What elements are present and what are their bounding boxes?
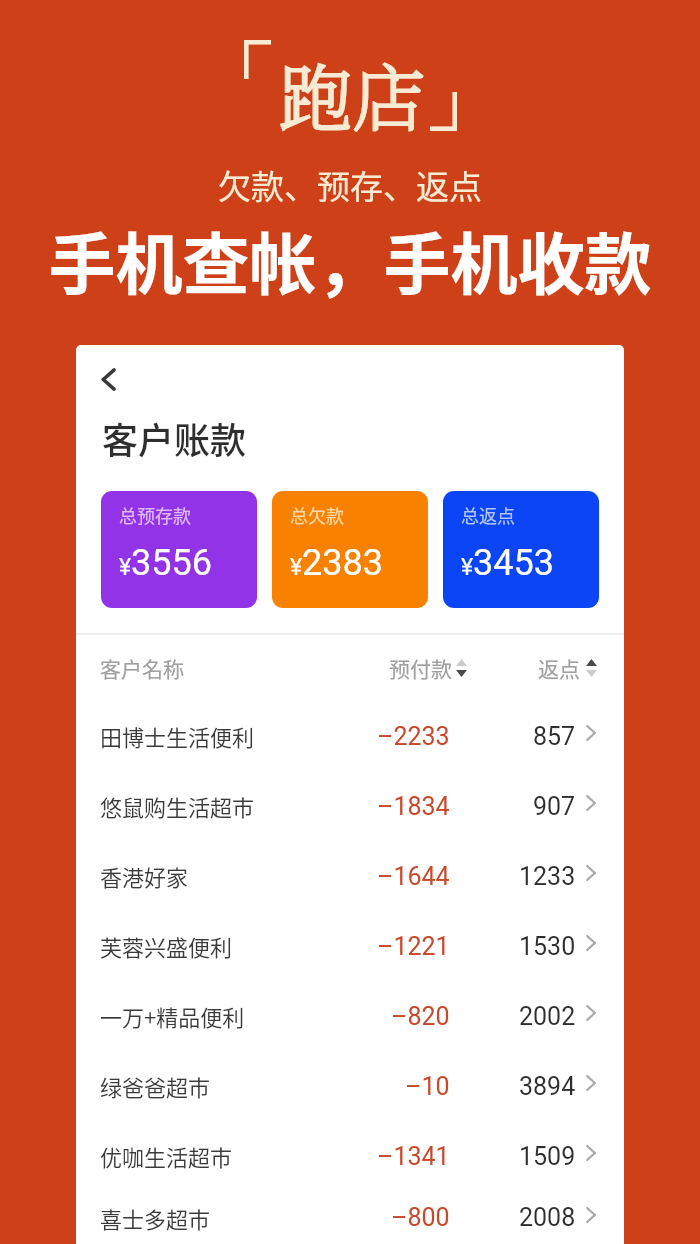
button[interactable]: Back [87,359,128,400]
button[interactable]: 一万+精品便利 [76,981,624,1051]
button[interactable]: 芙蓉兴盛便利 [76,911,624,981]
staticText: 芙蓉兴盛便利 [100,930,233,962]
staticText: 手机查帐，手机收款 [0,211,700,308]
staticText: 优咖生活超市 [100,1140,233,1172]
button[interactable]: 喜士多超市 [76,1191,624,1244]
staticText: –2233 [377,722,450,751]
button[interactable]: 返点 [467,635,597,701]
button[interactable]: 田博士生活便利 [76,701,624,771]
staticText: –1834 [377,792,450,821]
staticText: –10 [405,1072,450,1101]
staticText: 客户名称 [100,653,184,683]
staticText: 3894 [519,1072,576,1101]
staticText: 总欠款 [290,502,344,528]
button[interactable]: 悠鼠购生活超市 [76,771,624,841]
staticText: 悠鼠购生活超市 [100,790,255,822]
staticText: 1233 [519,862,576,891]
staticText: 客户账款 [102,412,247,464]
staticText: ¥3556 [119,542,213,584]
button[interactable]: 总返点 [443,491,599,608]
staticText: 1530 [519,932,576,961]
staticText: –1341 [377,1142,450,1171]
staticText: 香港好家 [100,860,189,892]
staticText: 857 [533,722,576,751]
staticText: 总返点 [461,502,515,528]
staticText: 2002 [519,1002,576,1031]
staticText: 欠款、预存、返点 [0,161,700,209]
staticText: 一万+精品便利 [100,1000,245,1032]
button[interactable]: 绿爸爸超市 [76,1051,624,1121]
staticText: 田博士生活便利 [100,720,255,752]
staticText: –820 [391,1002,450,1031]
staticText: 绿爸爸超市 [100,1070,211,1102]
button[interactable]: 总预存款 [101,491,257,608]
staticText: 返点 [538,653,580,683]
staticText: 1509 [519,1142,576,1171]
staticText: 预付款 [389,653,452,683]
button[interactable]: 优咖生活超市 [76,1121,624,1191]
staticText: ¥3453 [461,542,555,584]
staticText: 2008 [519,1203,576,1232]
staticText: 总预存款 [119,502,191,528]
staticText: 喜士多超市 [100,1202,211,1234]
staticText: –800 [391,1203,450,1232]
staticText: 跑店 [279,41,425,146]
staticText: –1644 [377,862,450,891]
staticText: –1221 [377,932,450,961]
staticText: ¥2383 [290,542,384,584]
button[interactable]: 香港好家 [76,841,624,911]
button[interactable]: 总欠款 [272,491,428,608]
button[interactable]: 预付款 [363,635,467,701]
staticText: 907 [533,792,576,821]
